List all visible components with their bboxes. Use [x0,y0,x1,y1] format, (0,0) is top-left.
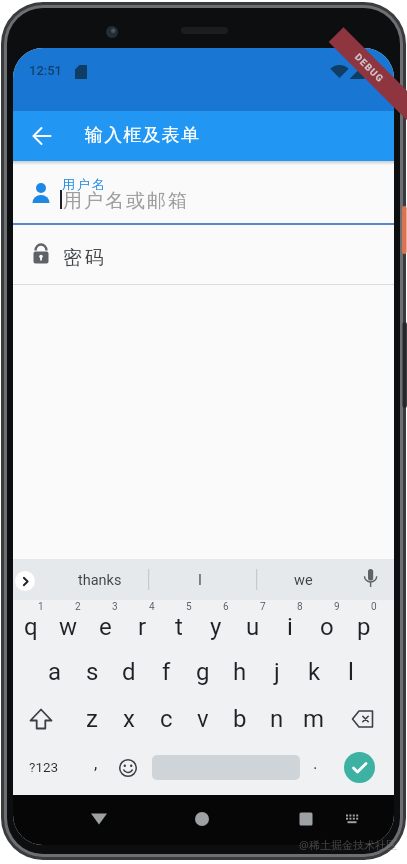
staticText: 密码 [62,246,105,270]
staticText: 6 [223,601,229,613]
staticText: 2 [75,601,81,613]
staticText: p [357,613,371,641]
staticText: b [233,705,247,733]
staticText: 1 [38,601,44,613]
button[interactable] [313,612,341,640]
staticText: 5 [186,601,192,613]
staticText: q [24,613,38,641]
button[interactable] [115,706,143,734]
staticText: r [138,613,147,641]
staticText: 用户名或邮箱 [62,189,188,213]
staticText: s [86,658,99,686]
button[interactable] [344,752,375,783]
staticText: 9 [334,601,340,613]
button[interactable] [263,659,291,687]
staticText: v [197,705,209,733]
button[interactable] [342,809,362,829]
button[interactable] [128,612,156,640]
staticText: 8 [297,601,303,613]
staticText: 3 [112,601,118,613]
staticText: z [86,705,98,733]
button[interactable] [152,706,180,734]
button[interactable]: we [273,569,333,591]
button[interactable] [78,659,106,687]
staticText: g [196,658,210,686]
button[interactable] [17,612,45,640]
button[interactable] [202,612,230,640]
button[interactable] [337,659,365,687]
button[interactable] [30,124,54,148]
button[interactable] [189,659,217,687]
staticText: x [123,705,135,733]
button[interactable] [89,809,109,829]
staticText: u [246,613,260,641]
button[interactable]: 用户名 [13,161,394,225]
staticText: w [59,613,78,641]
staticText: 0 [371,601,377,613]
button[interactable]: 密码 [13,225,394,285]
staticText: n [270,705,284,733]
button[interactable] [300,706,328,734]
staticText: t [175,613,183,641]
button[interactable] [300,659,328,687]
staticText: we [294,572,313,589]
staticText: 4 [149,601,155,613]
staticText: I [198,572,202,589]
staticText: a [48,658,62,686]
staticText: 输入框及表单 [85,124,201,147]
button[interactable] [78,706,106,734]
staticText: h [233,658,247,686]
staticText: i [287,613,293,641]
button[interactable] [226,706,254,734]
staticText: DEBUG [353,51,387,85]
button[interactable] [115,659,143,687]
staticText: m [303,705,325,733]
button[interactable]: thanks [60,569,140,591]
button[interactable] [357,565,385,593]
button[interactable] [165,612,193,640]
button[interactable] [263,706,291,734]
button[interactable] [192,809,212,829]
staticText: ?123 [29,759,59,775]
button[interactable] [41,659,69,687]
button[interactable] [91,612,119,640]
button[interactable] [189,706,217,734]
button[interactable] [226,659,254,687]
staticText: , [94,753,98,773]
button[interactable] [54,612,82,640]
staticText: o [320,613,334,641]
staticText: y [210,613,222,641]
staticText: 7 [260,601,266,613]
button[interactable]: I [180,569,220,591]
staticText: 12:51 [29,63,63,78]
button[interactable] [349,705,377,733]
staticText: l [348,658,354,686]
staticText: e [99,613,112,641]
button[interactable] [296,809,316,829]
staticText: 用户名 [61,176,106,192]
button[interactable] [15,571,35,591]
staticText: d [122,658,136,686]
staticText: j [274,658,280,686]
staticText: c [160,705,173,733]
staticText: . [313,753,318,773]
button[interactable] [27,705,55,733]
staticText: @稀土掘金技术社区 [299,837,397,852]
staticText: thanks [78,572,122,589]
button[interactable]: , [83,750,109,776]
button[interactable] [350,612,378,640]
button[interactable]: . [302,750,328,776]
button[interactable] [152,659,180,687]
button[interactable] [239,612,267,640]
button[interactable] [276,612,304,640]
staticText: k [308,658,321,686]
staticText: f [162,658,171,686]
button[interactable] [21,754,65,780]
button[interactable] [118,758,138,778]
